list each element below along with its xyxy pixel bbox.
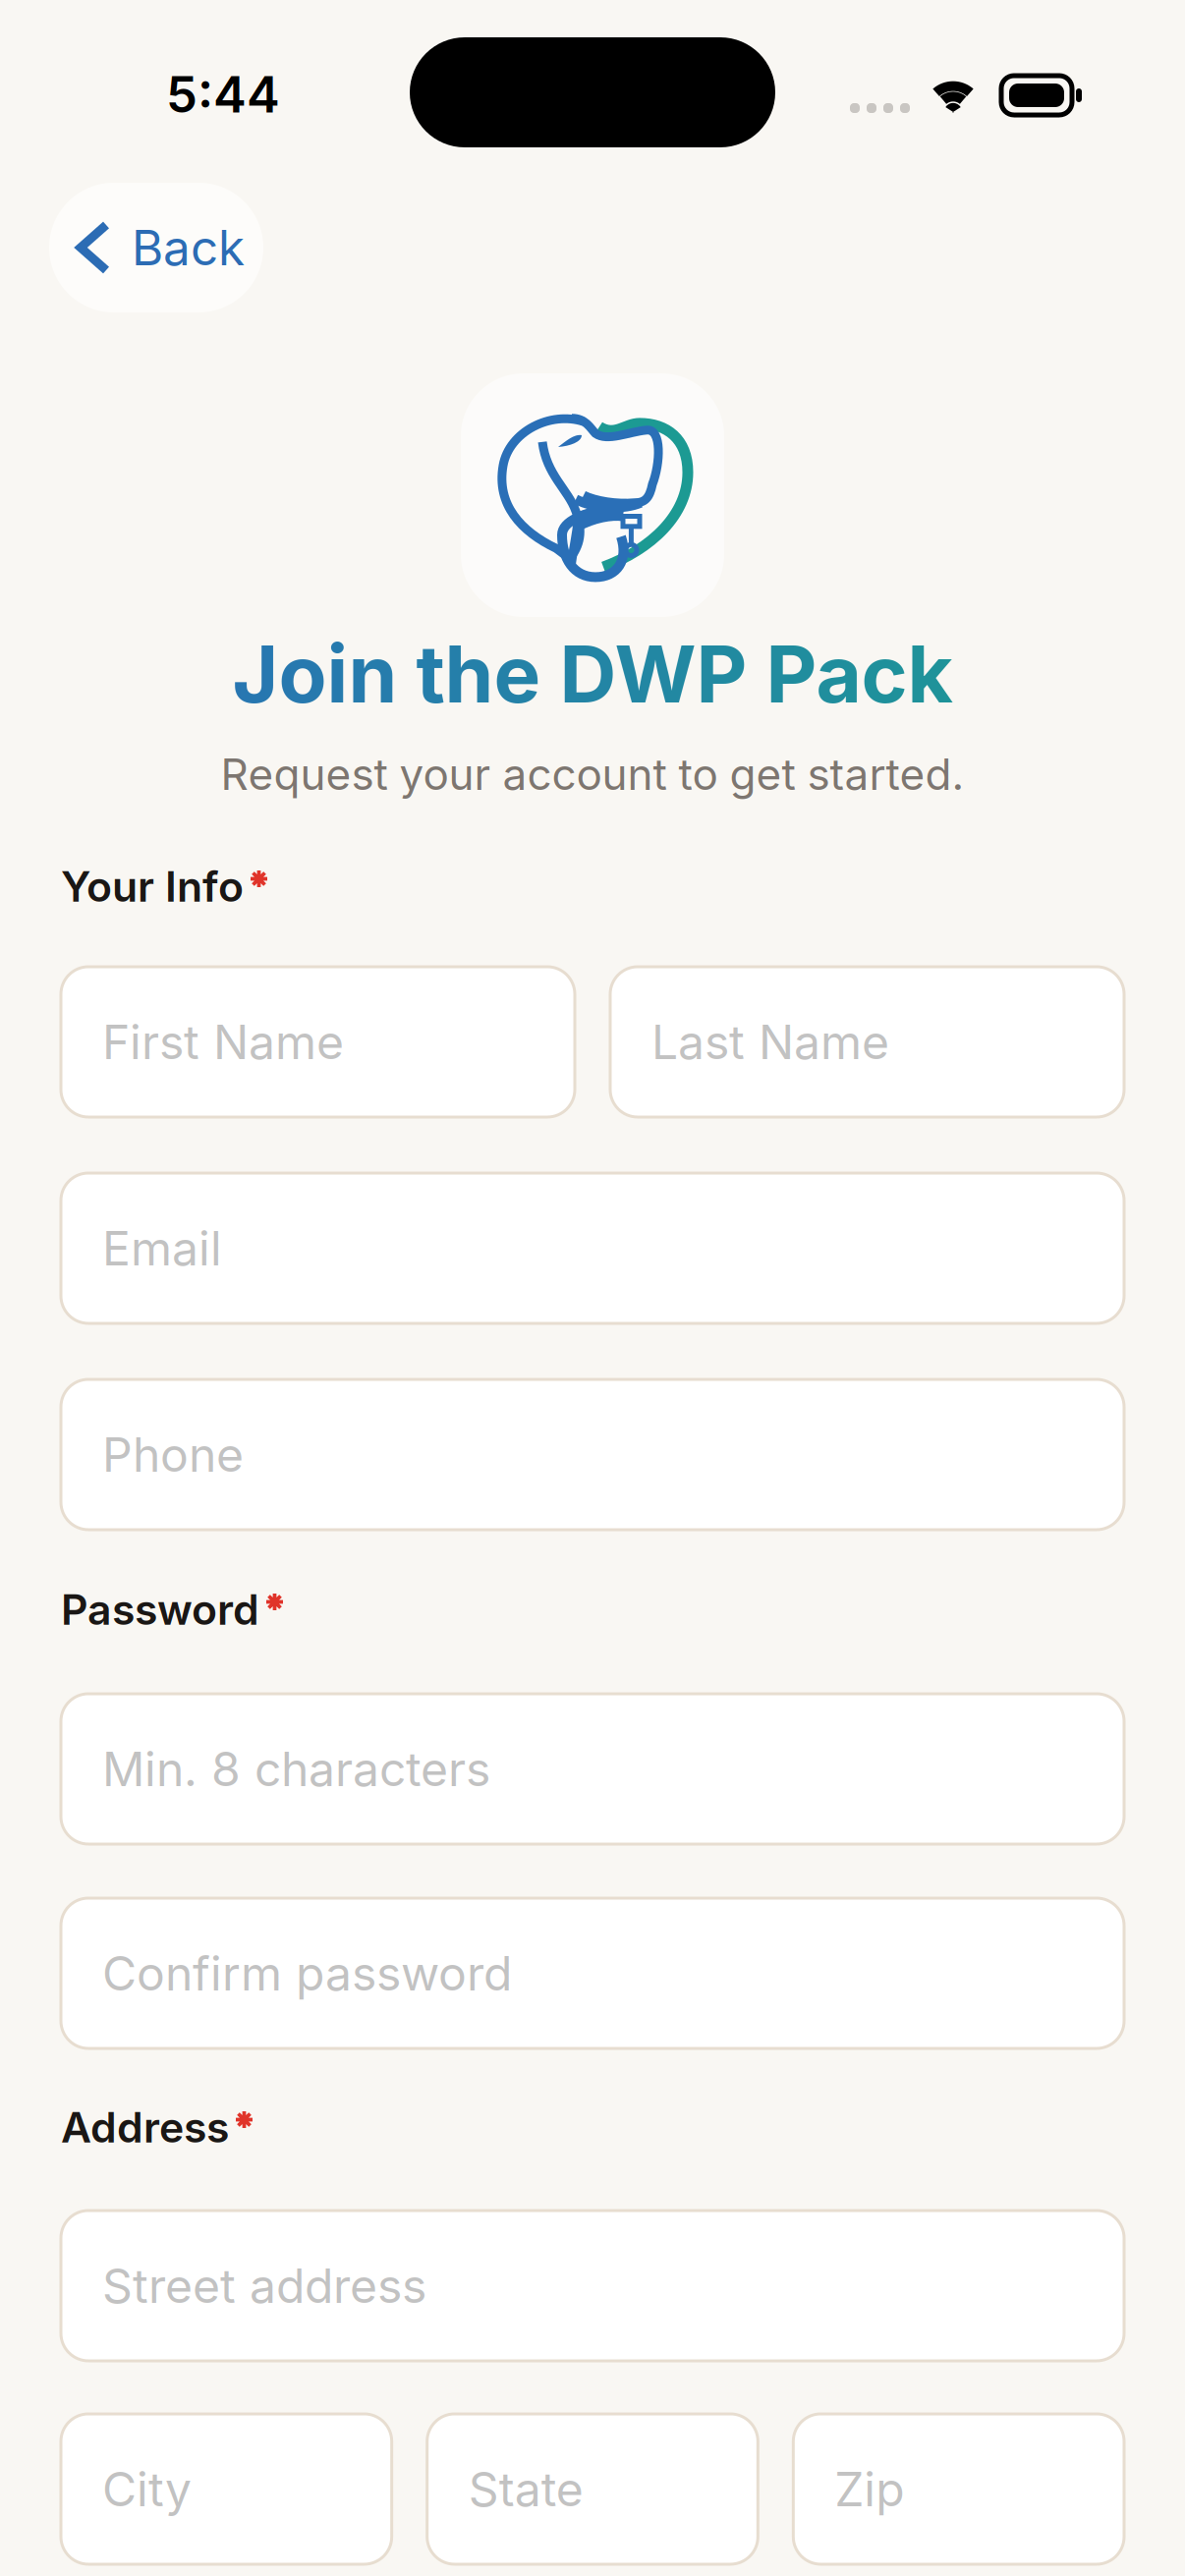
staticText: Request your account to get started. [221, 748, 964, 800]
button[interactable]: Street address [61, 2211, 1124, 2361]
button[interactable]: State [427, 2414, 758, 2564]
staticText: Zip [835, 2461, 904, 2518]
staticText: Email [102, 1220, 222, 1277]
staticText: Your Info [61, 861, 244, 912]
staticText: Password [61, 1584, 259, 1635]
button[interactable]: Phone [61, 1379, 1124, 1530]
button[interactable]: Last Name [610, 967, 1124, 1117]
button[interactable]: First Name [61, 967, 575, 1117]
staticText: State [468, 2461, 583, 2518]
staticText: Confirm password [102, 1945, 512, 2002]
button[interactable]: City [61, 2414, 392, 2564]
button[interactable]: Email [61, 1173, 1124, 1323]
button[interactable]: Zip [793, 2414, 1124, 2564]
staticText: City [102, 2461, 192, 2518]
staticText: 5:44 [166, 64, 280, 124]
staticText: Phone [102, 1426, 244, 1483]
staticText: Address [61, 2102, 229, 2153]
staticText: First Name [102, 1013, 344, 1070]
staticText: Last Name [651, 1013, 889, 1070]
button[interactable]: Confirm password [61, 1898, 1124, 2048]
staticText: Min. 8 characters [102, 1740, 490, 1798]
button[interactable]: Back [49, 183, 263, 312]
staticText: Back [132, 218, 245, 277]
staticText: Street address [102, 2257, 426, 2314]
button[interactable]: Min. 8 characters [61, 1694, 1124, 1844]
